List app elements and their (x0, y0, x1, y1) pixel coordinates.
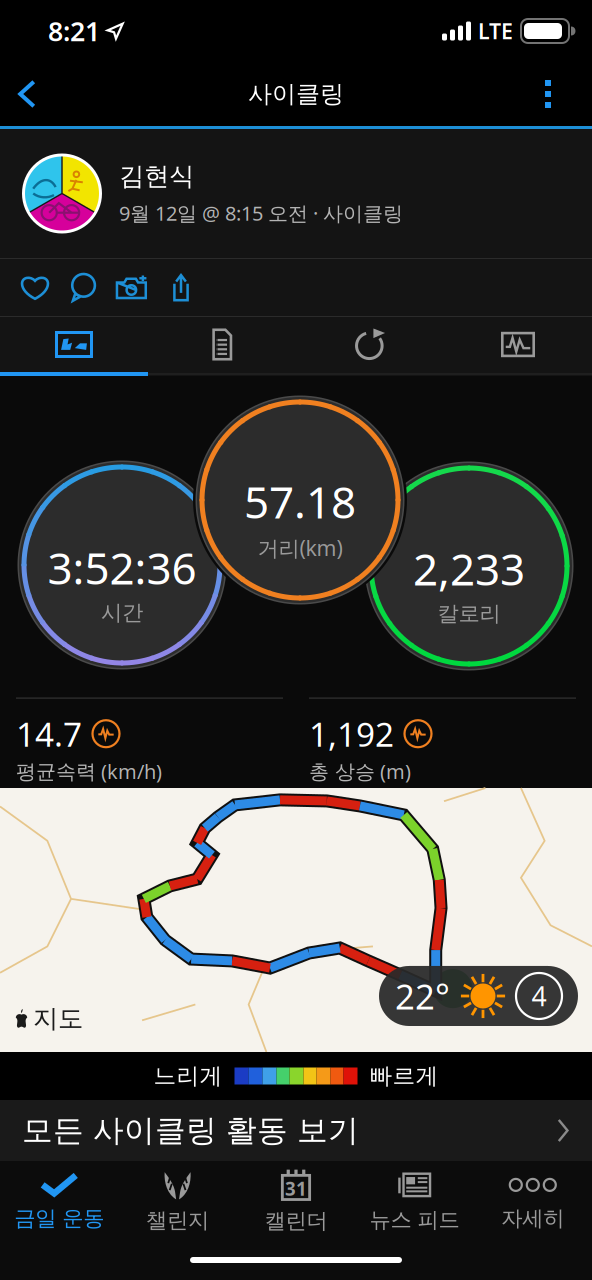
staticText: 김현식 (119, 161, 194, 192)
staticText: 14.7 (16, 712, 82, 756)
button[interactable]: More options (533, 62, 563, 126)
button[interactable]: 뉴스 피드 (355, 1161, 474, 1243)
button[interactable]: Map (0, 317, 148, 372)
staticText: 빠르게 (369, 1062, 438, 1090)
staticText: 평균속력 (km/h) (16, 758, 162, 784)
staticText: 사이클링 (248, 79, 344, 109)
button[interactable]: Laps (296, 317, 444, 372)
staticText: 시간 (101, 600, 143, 626)
staticText: 9월 12일 @ 8:15 오전 · 사이클링 (119, 200, 403, 226)
staticText: 1,192 (309, 712, 394, 756)
button[interactable]: Share (157, 259, 205, 315)
button[interactable]: 자세히 (474, 1161, 592, 1243)
staticText: 챌린지 (146, 1207, 209, 1234)
button[interactable]: Back (0, 62, 54, 126)
button[interactable]: 금일 운동 (0, 1161, 118, 1243)
button[interactable]: 모든 사이클링 활동 보기 (0, 1100, 592, 1161)
staticText: 느리게 (153, 1062, 222, 1090)
button[interactable]: Comment (59, 259, 107, 315)
staticText: 캘린더 (264, 1208, 327, 1234)
staticText: 거리(km) (257, 533, 342, 562)
staticText: 뉴스 피드 (369, 1207, 459, 1233)
staticText: 31 (285, 1176, 307, 1201)
staticText: 57.18 (244, 472, 356, 530)
staticText: 4 (531, 978, 546, 1014)
button[interactable]: Like (11, 259, 59, 315)
staticText: 3:52:36 (47, 538, 196, 597)
staticText: 금일 운동 (14, 1205, 104, 1232)
staticText: 22° (395, 973, 450, 1019)
button[interactable]: Details (148, 317, 296, 372)
staticText: 8:21 (48, 13, 100, 49)
button[interactable]: 챌린지 (118, 1161, 237, 1243)
staticText: 자세히 (501, 1205, 564, 1232)
staticText: 칼로리 (437, 601, 500, 627)
button[interactable]: Add photo (107, 259, 157, 315)
staticText: LTE (478, 17, 513, 45)
staticText: 2,233 (413, 539, 525, 598)
staticText: 지도 (33, 1003, 83, 1034)
staticText: 총 상승 (m) (309, 758, 411, 784)
button[interactable]: 김현식 (0, 129, 592, 258)
staticText: 모든 사이클링 활동 보기 (22, 1112, 359, 1149)
button[interactable]: Charts (444, 317, 592, 372)
button[interactable]: 31 (237, 1161, 355, 1243)
